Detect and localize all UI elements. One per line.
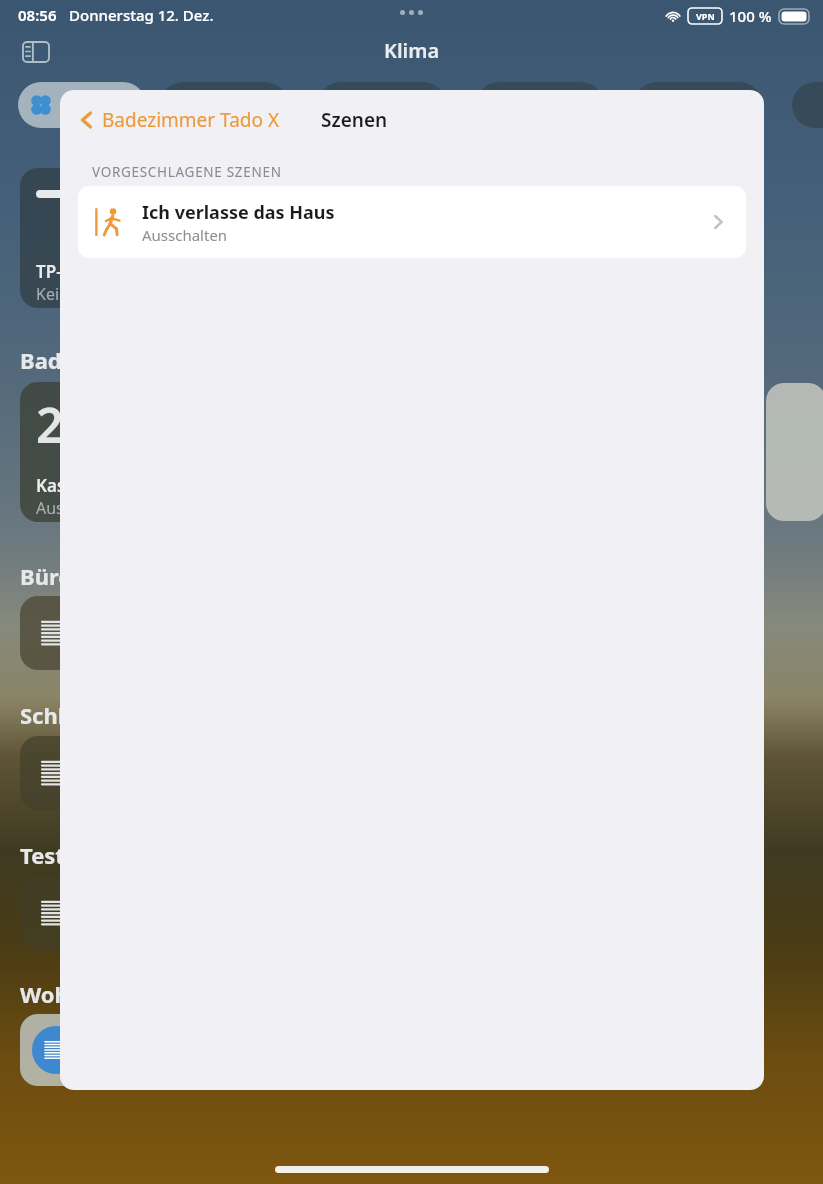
staticText: Schl <box>20 700 65 730</box>
staticText: Bade <box>20 345 75 375</box>
staticText: Szenen <box>321 107 388 133</box>
staticText: VPN <box>696 10 715 22</box>
staticText: VORGESCHLAGENE SZENEN <box>92 163 282 181</box>
staticText: 100 % <box>729 6 772 26</box>
staticText: Klima <box>384 37 440 64</box>
staticText: TP-L <box>36 260 71 283</box>
staticText: Test <box>20 840 65 870</box>
staticText: Woh <box>20 979 69 1009</box>
staticText: Donnerstag 12. Dez. <box>69 5 214 25</box>
button[interactable]: Seitenleiste <box>16 32 56 72</box>
staticText: Büro <box>20 561 73 591</box>
staticText: Ausschalten <box>142 225 228 245</box>
button[interactable]: Ich verlasse das Haus <box>78 186 746 258</box>
staticText: Kein <box>36 283 69 305</box>
staticText: 08:56 <box>18 5 57 25</box>
staticText: 2 <box>36 392 64 457</box>
staticText: Badezimmer Tado X <box>102 107 280 133</box>
staticText: Kasa <box>36 474 76 497</box>
button[interactable]: Badezimmer Tado X <box>68 90 288 150</box>
staticText: Aus <box>36 497 64 519</box>
staticText: Ich verlasse das Haus <box>142 200 335 225</box>
